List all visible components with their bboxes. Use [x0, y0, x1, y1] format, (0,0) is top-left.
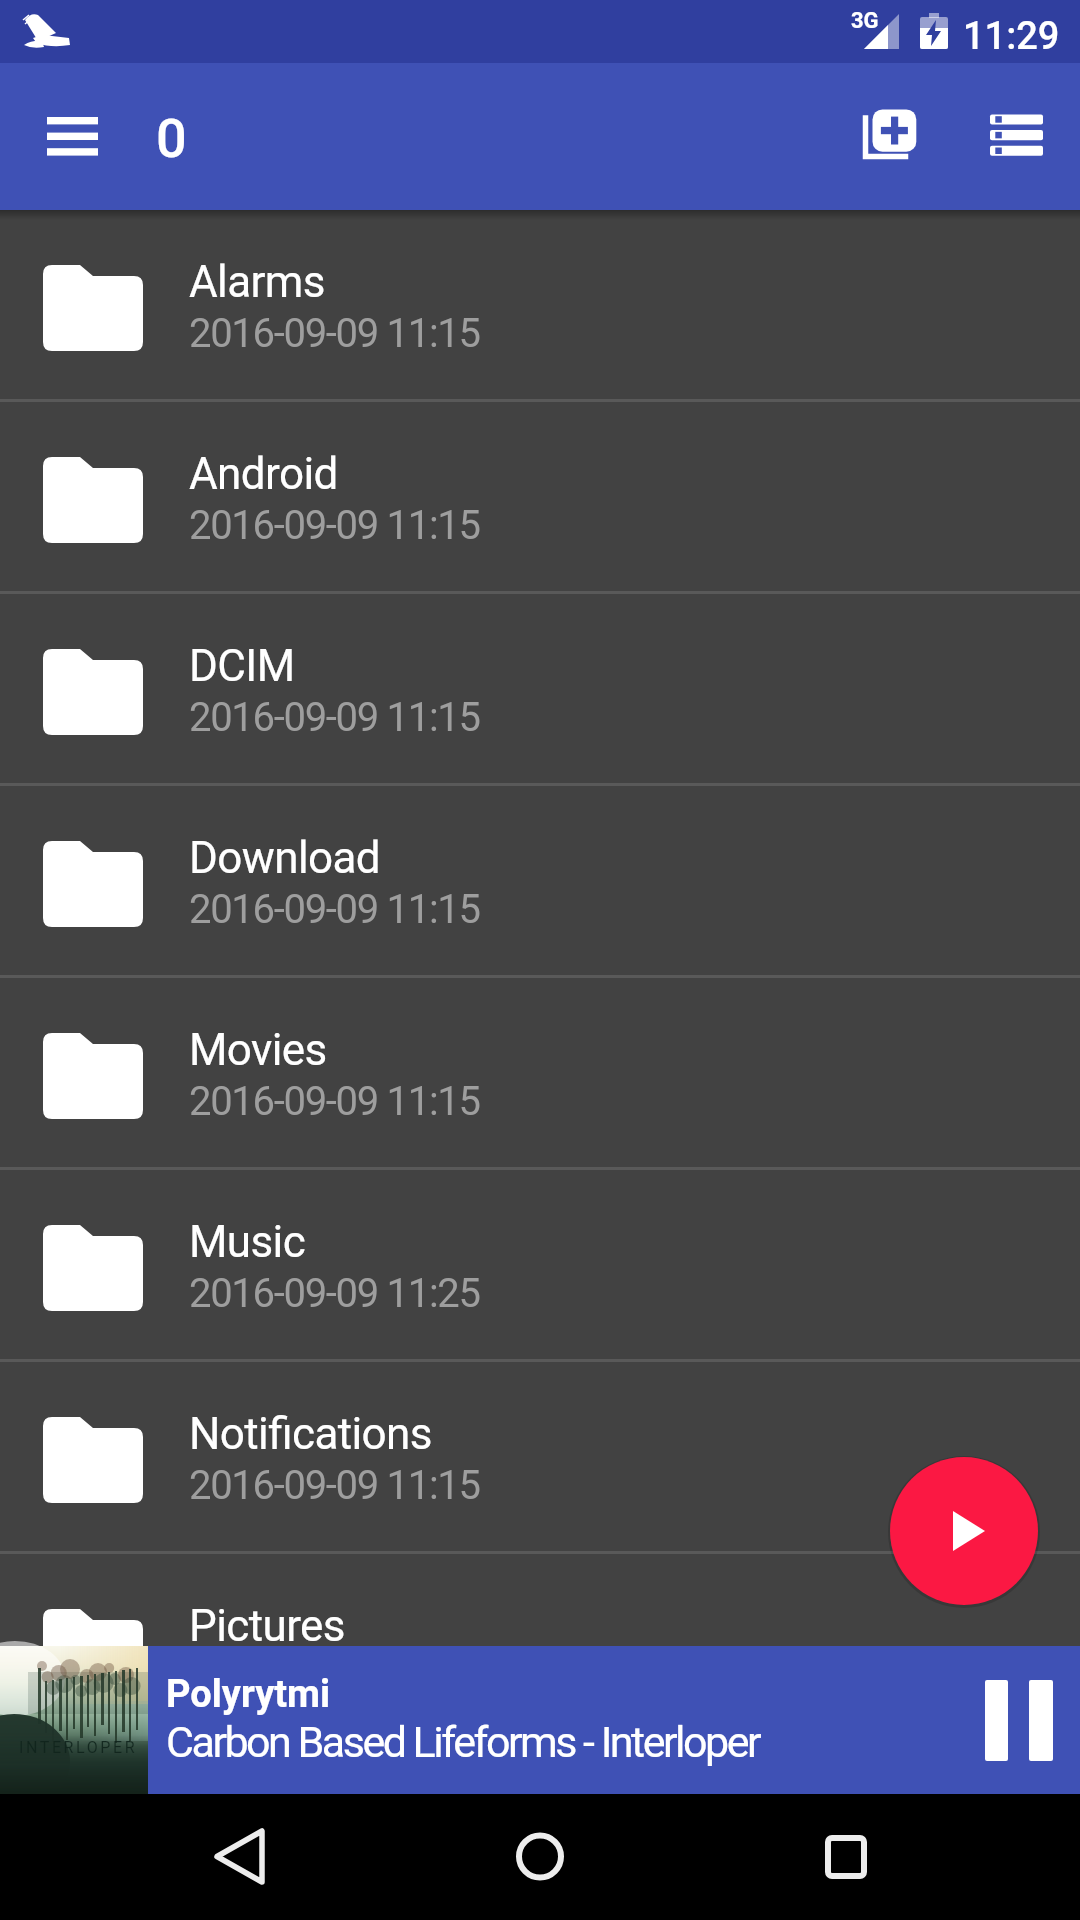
staticText: Android	[189, 448, 338, 500]
button[interactable]	[482, 1799, 598, 1915]
button[interactable]: Alarms	[0, 210, 1080, 402]
staticText: 2016-09-09 11:15	[189, 1078, 480, 1125]
staticText: DCIM	[189, 640, 295, 692]
button[interactable]	[787, 1799, 903, 1915]
staticText: 0	[156, 107, 187, 170]
button[interactable]	[844, 90, 934, 180]
button[interactable]: Download	[0, 786, 1080, 978]
staticText: Music	[189, 1216, 306, 1268]
button[interactable]	[27, 97, 117, 187]
button[interactable]	[972, 90, 1062, 180]
staticText: Carbon Based Lifeforms - Interloper	[166, 1717, 760, 1767]
button[interactable]: DCIM	[0, 594, 1080, 786]
button[interactable]: Movies	[0, 978, 1080, 1170]
staticText: Movies	[189, 1024, 327, 1076]
staticText: 11:29	[963, 14, 1060, 59]
button[interactable]	[960, 1660, 1080, 1780]
button[interactable]: Music	[0, 1170, 1080, 1362]
staticText: 2016-09-09 11:15	[189, 310, 480, 357]
button[interactable]	[890, 1457, 1038, 1605]
staticText: 2016-09-09 11:25	[189, 1270, 480, 1317]
button[interactable]: Android	[0, 402, 1080, 594]
staticText: 2016-09-09 11:15	[189, 1462, 480, 1509]
staticText: INTERLOPER	[19, 1738, 138, 1757]
button[interactable]: INTERLOPER	[0, 1646, 1080, 1794]
staticText: 3G	[851, 8, 879, 34]
staticText: Notifications	[189, 1408, 432, 1460]
staticText: 2016-09-09 11:15	[189, 694, 480, 741]
staticText: Download	[189, 832, 381, 884]
button[interactable]	[182, 1799, 298, 1915]
button[interactable]: Pictures	[0, 1554, 1080, 1746]
staticText: Pictures	[189, 1600, 345, 1652]
button[interactable]: Notifications	[0, 1362, 1080, 1554]
staticText: Alarms	[189, 256, 325, 308]
staticText: Polyrytmi	[166, 1672, 331, 1717]
staticText: 2016-09-09 11:15	[189, 502, 480, 549]
staticText: 2016-09-09 11:15	[189, 886, 480, 933]
staticText: 2016-09-09 11:15	[189, 1654, 480, 1701]
